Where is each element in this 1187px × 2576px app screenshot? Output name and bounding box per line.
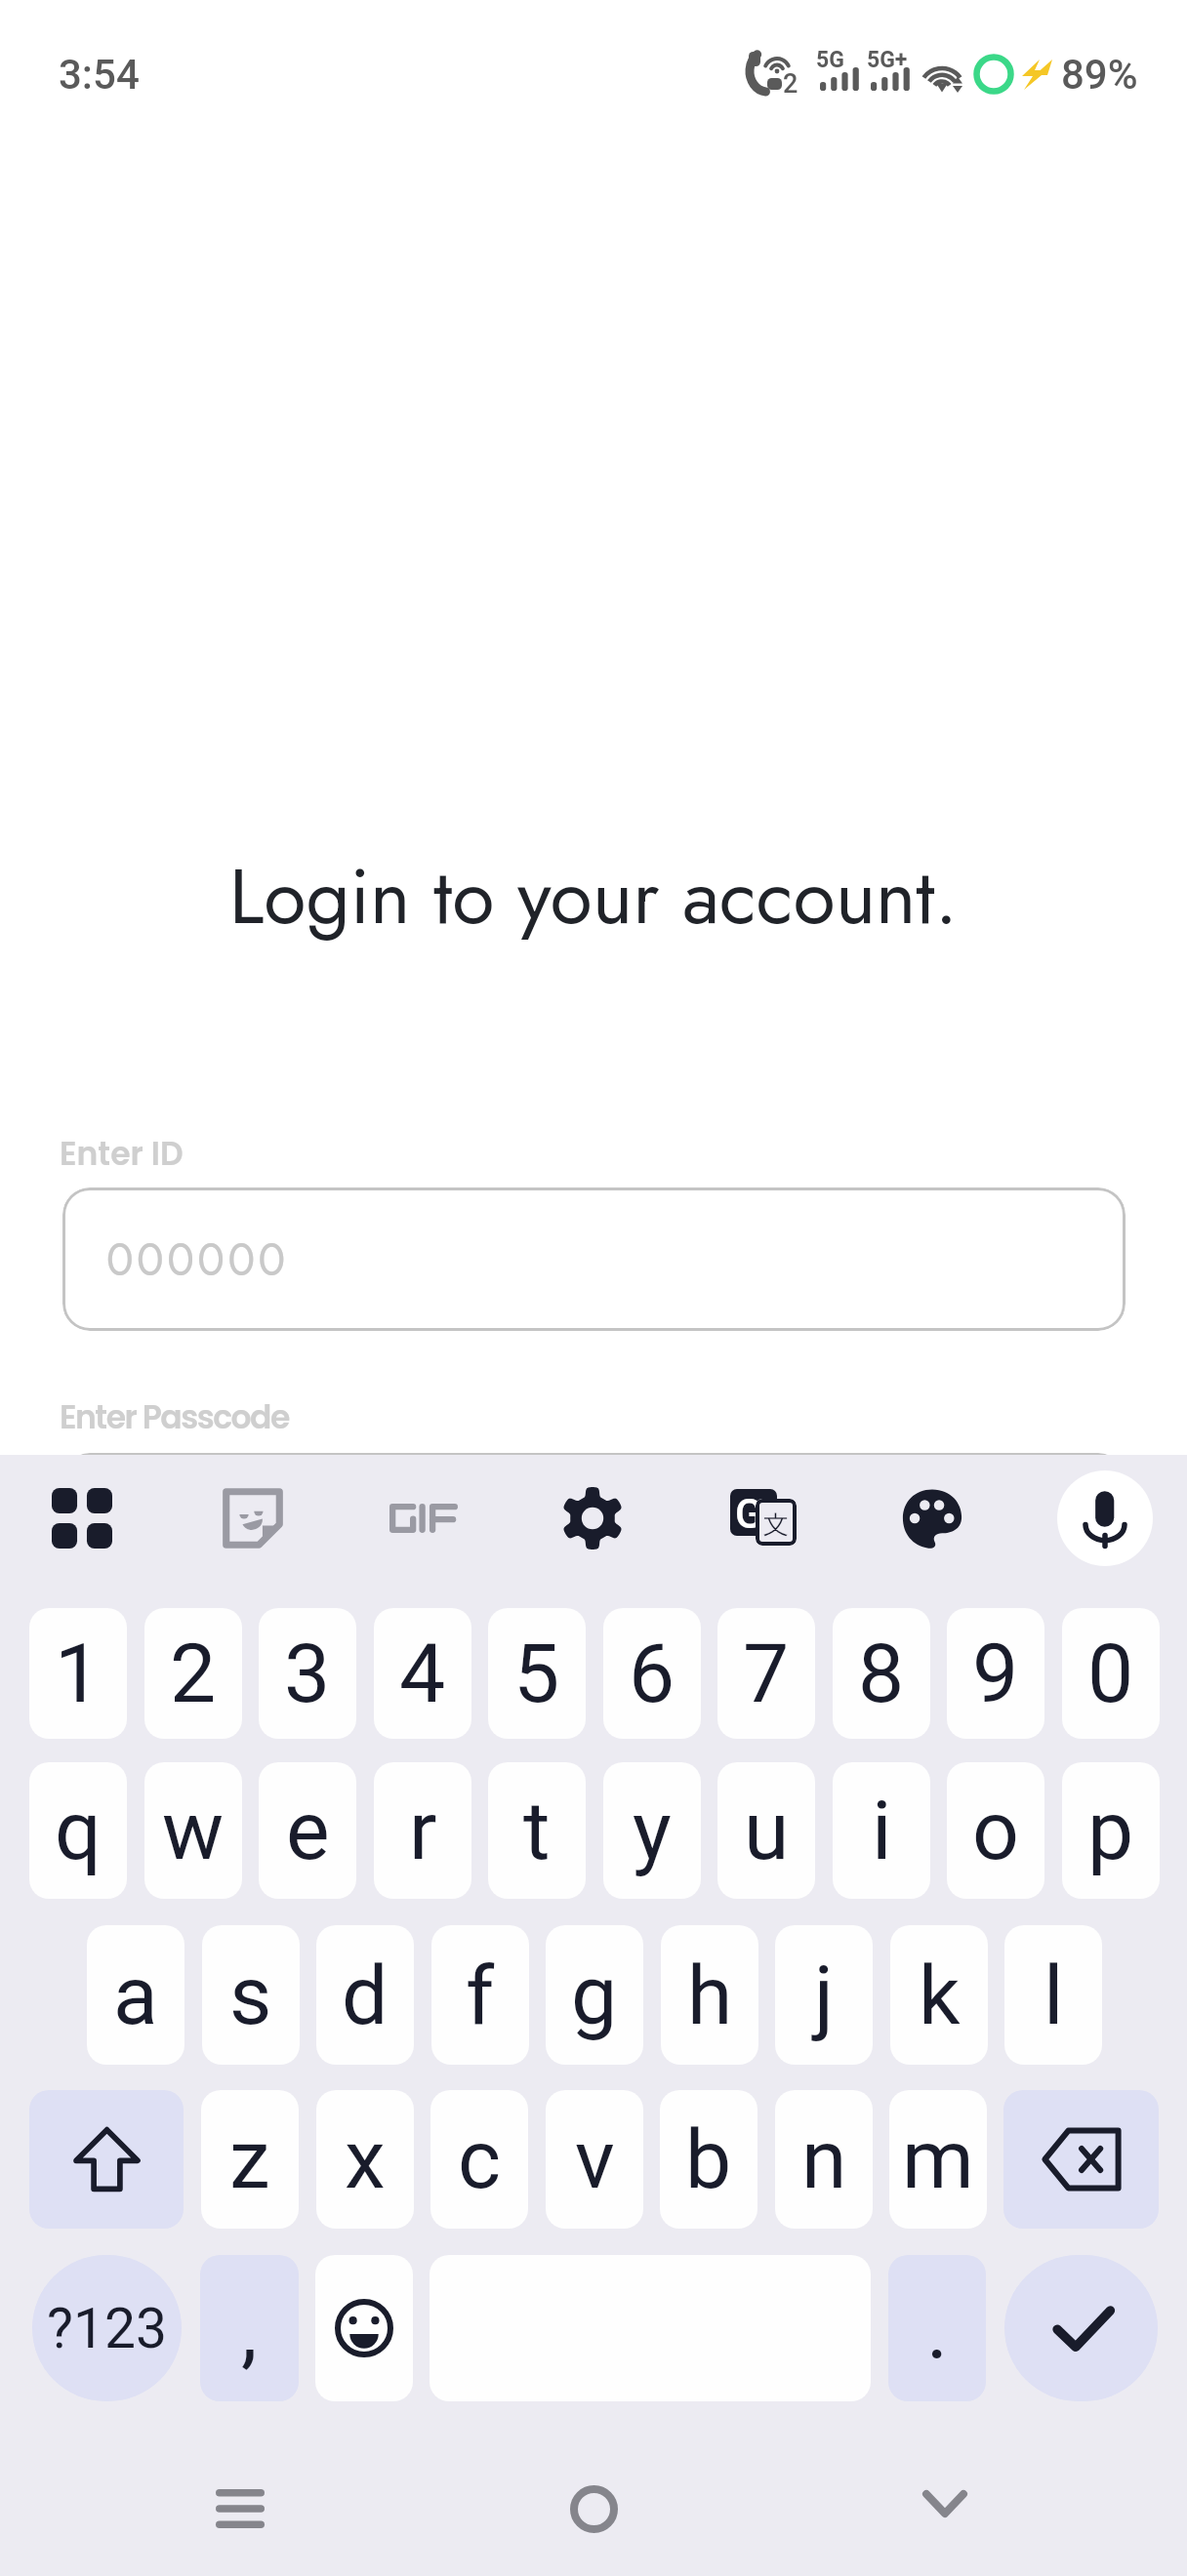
button[interactable]: h [661,1925,758,2065]
staticText: i [872,1783,892,1878]
staticText: t [523,1783,551,1878]
staticText: m [902,2112,974,2207]
button[interactable]: u [717,1762,815,1899]
staticText: 5G+ [867,47,908,73]
staticText: g [571,1948,618,2043]
staticText: f [466,1948,495,2043]
button[interactable]: y [603,1762,701,1899]
staticText: 1 [55,1626,102,1721]
staticText: 89% [1061,51,1138,99]
button[interactable]: a [87,1925,184,2065]
staticText: c [458,2112,501,2207]
button[interactable]: t [488,1762,586,1899]
staticText: 0 [1087,1626,1134,1721]
staticText: 9 [972,1626,1019,1721]
staticText: h [687,1948,733,2043]
button[interactable]: b [660,2090,757,2229]
button[interactable]: . [888,2255,986,2401]
staticText: x [345,2112,386,2207]
button[interactable]: 000000 [62,1187,1126,1331]
button[interactable]: Apps [39,1475,125,1561]
button[interactable]: Hide keyboard [896,2455,994,2553]
staticText: k [919,1948,961,2043]
staticText: Login to your account. [0,840,1187,951]
button[interactable]: x [316,2090,414,2229]
staticText: . [926,2282,949,2378]
staticText: u [744,1783,790,1878]
button[interactable] [62,1453,1126,1596]
button[interactable]: 9 [947,1608,1044,1739]
staticText: 7 [743,1626,790,1721]
button[interactable]: 0 [1062,1608,1160,1739]
staticText: p [1087,1783,1134,1878]
staticText: 5G [816,47,844,73]
staticText: G [735,1490,763,1536]
staticText: 4 [399,1626,446,1721]
button[interactable]: w [144,1762,242,1899]
button[interactable]: 5 [488,1608,586,1739]
staticText: a [113,1948,158,2043]
button[interactable]: g [546,1925,643,2065]
button[interactable]: r [374,1762,471,1899]
button[interactable]: p [1062,1762,1160,1899]
staticText: 3 [284,1626,331,1721]
staticText: l [1044,1948,1064,2043]
button[interactable]: d [316,1925,414,2065]
button[interactable]: Home [545,2460,642,2557]
button[interactable]: GIF [377,1475,471,1561]
staticText: Enter ID [60,1131,184,1176]
staticText: 8 [858,1626,905,1721]
button[interactable]: m [889,2090,987,2229]
button[interactable]: 1 [29,1608,127,1739]
button[interactable]: Backspace [1003,2090,1159,2229]
button[interactable]: Translate [722,1475,808,1561]
button[interactable]: 2 [144,1608,242,1739]
button[interactable]: q [29,1762,127,1899]
button[interactable]: e [259,1762,356,1899]
button[interactable]: 8 [833,1608,930,1739]
button[interactable]: Voice input [1057,1470,1153,1566]
staticText: 2 [170,1626,217,1721]
button[interactable]: l [1004,1925,1102,2065]
staticText: 5 [513,1626,560,1721]
staticText: s [229,1948,272,2043]
staticText: q [55,1783,102,1878]
button[interactable]: i [833,1762,930,1899]
button[interactable]: ?123 [32,2255,182,2401]
staticText: 000000 [106,1228,289,1292]
staticText: o [972,1783,1019,1878]
staticText: Enter Passcode [60,1394,289,1439]
button[interactable]: z [201,2090,299,2229]
button[interactable]: Stickers [210,1475,296,1561]
button[interactable]: n [775,2090,873,2229]
button[interactable]: 4 [374,1608,471,1739]
staticText: 2 [783,68,798,100]
button[interactable]: f [431,1925,529,2065]
button[interactable]: Theme [889,1475,975,1561]
button[interactable]: Enter [1004,2255,1158,2401]
button[interactable]: Settings [550,1475,635,1561]
button[interactable]: Shift [29,2090,184,2229]
staticText: v [575,2112,615,2207]
button[interactable]: s [202,1925,300,2065]
staticText: 6 [629,1626,675,1721]
button[interactable]: c [430,2090,528,2229]
staticText: b [685,2112,732,2207]
button[interactable]: , [200,2255,299,2401]
button[interactable]: o [947,1762,1044,1899]
button[interactable]: j [775,1925,873,2065]
button[interactable]: v [546,2090,643,2229]
staticText: e [286,1783,330,1878]
staticText: d [342,1948,389,2043]
button[interactable]: 6 [603,1608,701,1739]
staticText: 3:54 [59,51,140,99]
staticText: w [162,1783,225,1878]
button[interactable]: Recents [191,2460,289,2557]
button[interactable]: 3 [259,1608,356,1739]
staticText: z [229,2112,270,2207]
button[interactable]: Emoji [315,2255,413,2401]
button[interactable]: k [890,1925,988,2065]
button[interactable]: 7 [717,1608,815,1739]
staticText: ?123 [47,2296,168,2361]
